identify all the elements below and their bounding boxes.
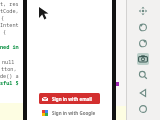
staticText: sful $ <box>0 79 19 86</box>
staticText: t, res <box>0 0 19 7</box>
button[interactable]: Sign in with email <box>39 93 100 104</box>
button[interactable]: Sign in with Google <box>39 107 100 118</box>
staticText: tton, <box>1 65 17 72</box>
button[interactable]: Rotate left <box>137 21 149 33</box>
staticText: { <box>3 28 7 35</box>
button[interactable]: Home <box>137 103 149 115</box>
button[interactable]: Take screenshot <box>137 53 149 65</box>
staticText: Sign in with Google <box>52 110 96 116</box>
staticText: null <box>2 58 15 65</box>
staticText: { <box>1 14 5 21</box>
staticText: de() a <box>0 72 19 79</box>
staticText: ned in <box>0 43 19 50</box>
staticText: Intent <box>0 21 19 28</box>
staticText: tCode, <box>0 7 19 14</box>
button[interactable]: Pan <box>137 5 149 17</box>
button[interactable]: Rotate right <box>137 37 149 49</box>
staticText: Sign in with email <box>52 96 92 102</box>
button[interactable]: Zoom <box>137 69 149 81</box>
button[interactable]: Back <box>137 87 149 99</box>
